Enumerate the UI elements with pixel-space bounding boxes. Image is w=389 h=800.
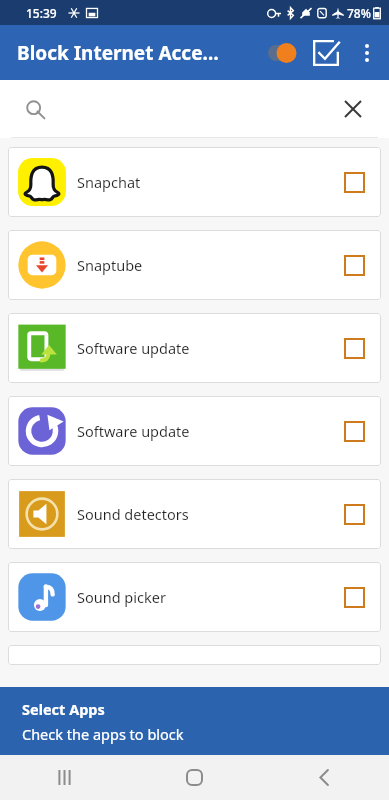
staticText: Sound detectors xyxy=(77,504,332,524)
button[interactable]: Recent apps xyxy=(0,755,129,800)
button[interactable]: Block Software update xyxy=(332,326,376,370)
button[interactable]: Block Sound detectors xyxy=(332,492,376,536)
staticText: Block Internet Acce… xyxy=(17,40,219,66)
staticText: Snapchat xyxy=(77,172,332,192)
staticText: Select Apps xyxy=(22,699,105,719)
button[interactable]: Toggle blocking xyxy=(260,32,304,74)
button[interactable]: Snapchat xyxy=(8,147,381,217)
button[interactable]: Sound detectors xyxy=(8,479,381,549)
button[interactable]: Home xyxy=(129,755,259,800)
staticText: 15:39 xyxy=(26,5,57,21)
button[interactable]: Select all xyxy=(304,31,348,75)
staticText: Snaptube xyxy=(77,255,332,275)
staticText: 78% xyxy=(347,5,371,21)
button[interactable]: Software update xyxy=(8,313,381,383)
button[interactable]: Clear search xyxy=(335,91,371,127)
staticText: Software update xyxy=(77,338,332,358)
staticText: Software update xyxy=(77,421,332,441)
button[interactable] xyxy=(8,645,381,665)
button[interactable]: Sound picker xyxy=(8,562,381,632)
button[interactable]: Back xyxy=(259,755,389,800)
button[interactable]: More options xyxy=(348,31,386,75)
button[interactable]: Block Sound picker xyxy=(332,575,376,619)
button[interactable]: Block Software update xyxy=(332,409,376,453)
staticText: Sound picker xyxy=(77,587,332,607)
button[interactable]: Block Snaptube xyxy=(332,243,376,287)
staticText: Check the apps to block xyxy=(22,724,184,744)
button[interactable]: Software update xyxy=(8,396,381,466)
button[interactable]: Snaptube xyxy=(8,230,381,300)
button[interactable]: Select Apps xyxy=(0,687,389,755)
button[interactable]: Block Snapchat xyxy=(332,160,376,204)
